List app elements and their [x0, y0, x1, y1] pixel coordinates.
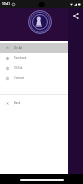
button[interactable]: Share: [69, 9, 83, 23]
staticText: TikTok: [14, 66, 23, 70]
button[interactable]: Facebook: [0, 53, 68, 63]
staticText: Contact: [14, 76, 25, 80]
button[interactable]: TikTok: [0, 63, 68, 73]
staticText: Back: [14, 101, 21, 105]
staticText: On Air: [14, 46, 23, 50]
button[interactable]: Contact: [0, 73, 68, 83]
button[interactable]: Back: [0, 98, 68, 108]
button[interactable]: On Air: [0, 43, 68, 53]
staticText: 10:41: [2, 2, 11, 6]
staticText: Facebook: [14, 56, 27, 60]
